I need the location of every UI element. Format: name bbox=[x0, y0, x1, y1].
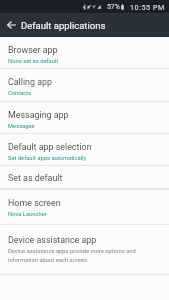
button[interactable]: Set as default bbox=[0, 166, 169, 188]
staticText: Default applications bbox=[21, 20, 106, 31]
staticText: None set as default bbox=[8, 58, 59, 65]
staticText: Messages bbox=[8, 123, 35, 130]
staticText: Contacts bbox=[8, 90, 32, 97]
staticText: 57% bbox=[107, 3, 120, 11]
button[interactable]: Default app selection bbox=[0, 134, 169, 165]
staticText: Browser app bbox=[8, 45, 58, 55]
button[interactable]: Calling app bbox=[0, 69, 169, 101]
button[interactable]: Navigate up bbox=[0, 13, 23, 37]
staticText: Calling app bbox=[8, 77, 53, 87]
button[interactable]: Messaging app bbox=[0, 102, 169, 133]
button[interactable]: Home screen bbox=[0, 190, 169, 224]
staticText: Home screen bbox=[8, 198, 61, 208]
staticText: 10:55 PM bbox=[130, 3, 165, 11]
staticText: Device assistance apps provide more opti… bbox=[8, 248, 162, 264]
button[interactable]: Browser app bbox=[0, 37, 169, 68]
staticText: Device assistance app bbox=[8, 235, 97, 245]
staticText: Messaging app bbox=[8, 110, 69, 120]
button[interactable]: Device assistance app bbox=[0, 225, 169, 274]
staticText: Nova Launcher bbox=[8, 211, 47, 218]
staticText: Default app selection bbox=[8, 142, 92, 152]
staticText: Set as default bbox=[8, 173, 63, 183]
staticText: Set default apps automatically bbox=[8, 155, 87, 162]
